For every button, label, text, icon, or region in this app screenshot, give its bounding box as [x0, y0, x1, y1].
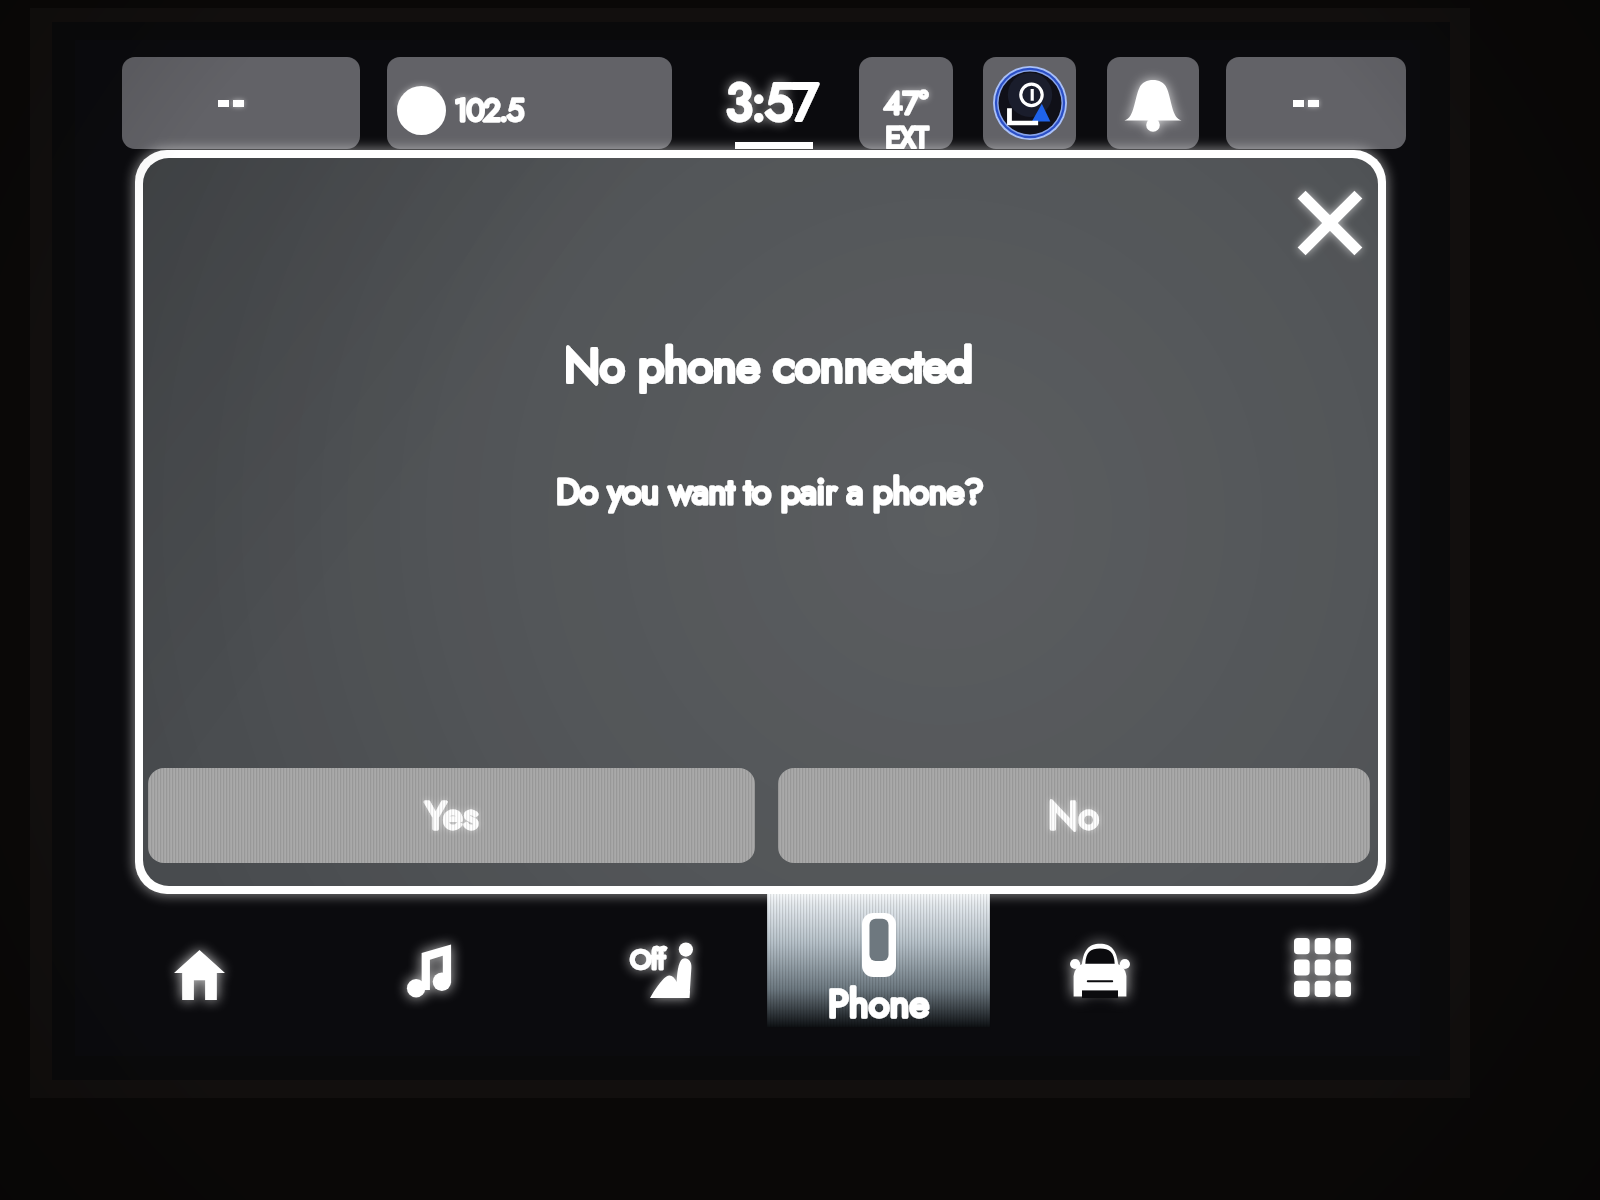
staticText: Yes — [352, 788, 552, 843]
button[interactable]: Climate — [560, 897, 766, 1042]
staticText: 47° — [859, 80, 953, 126]
staticText: EXT — [859, 117, 953, 149]
button[interactable]: Right info tile — [1226, 57, 1406, 149]
staticText: No — [974, 788, 1174, 843]
button[interactable]: Close — [1265, 158, 1378, 288]
staticText: Phone — [767, 976, 990, 1031]
staticText: 3:57 — [719, 66, 823, 138]
button[interactable]: Vehicle — [997, 897, 1203, 1042]
button[interactable]: No — [778, 768, 1370, 863]
button[interactable]: Driver assist — [983, 57, 1076, 149]
button[interactable]: 3:57 — [683, 57, 855, 165]
staticText: 3:57 — [719, 66, 823, 138]
staticText: Off — [630, 942, 676, 979]
staticText: Yes — [352, 788, 552, 843]
staticText: Phone — [767, 976, 990, 1031]
button[interactable]: Apps — [1219, 895, 1425, 1040]
button[interactable]: Exterior temperature 47 degrees — [859, 57, 953, 149]
staticText: Yes — [352, 788, 552, 843]
staticText: No — [974, 788, 1174, 843]
staticText: 102.5 — [454, 88, 544, 133]
staticText: Off — [630, 940, 676, 979]
staticText: 102.5 — [454, 88, 477, 102]
staticText: Yes — [352, 788, 552, 843]
staticText: No phone connected — [151, 333, 1378, 399]
button[interactable]: Media — [326, 899, 532, 1044]
staticText: Off — [630, 940, 676, 979]
staticText: EXT — [859, 117, 953, 149]
staticText: 47° — [859, 80, 953, 103]
staticText: No — [974, 788, 1174, 843]
staticText: 47° — [859, 80, 953, 103]
button[interactable]: Notifications — [1107, 57, 1199, 149]
button[interactable]: Left info tile — [122, 57, 360, 149]
staticText: 3:57 — [719, 66, 787, 129]
staticText: Do you want to pair a phone? — [152, 467, 1378, 518]
button[interactable]: Radio 102.5 FM — [387, 57, 672, 149]
staticText: 102.5 — [454, 88, 544, 133]
staticText: Do you want to pair a phone? — [152, 467, 1378, 518]
staticText: No — [974, 788, 1174, 843]
staticText: 102.5 — [454, 88, 477, 102]
staticText: 3:57 — [719, 66, 787, 129]
staticText: Off — [630, 942, 676, 979]
staticText: No phone connected — [151, 333, 1378, 399]
button[interactable]: Yes — [148, 768, 755, 863]
button[interactable]: Home — [96, 902, 302, 1047]
button[interactable]: Phone — [767, 882, 990, 1027]
staticText: 47° — [859, 80, 953, 126]
